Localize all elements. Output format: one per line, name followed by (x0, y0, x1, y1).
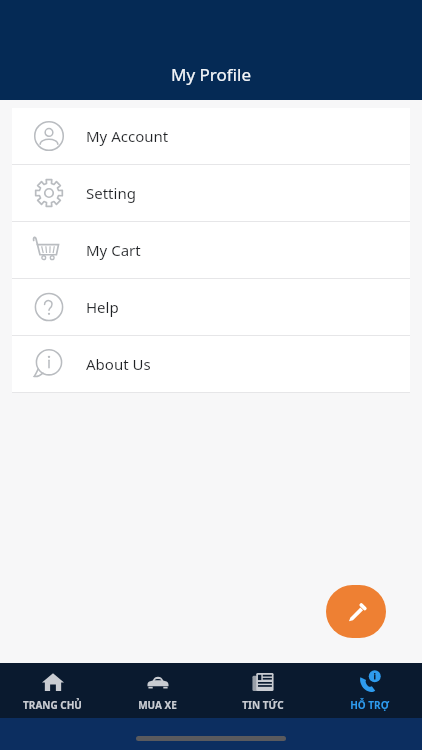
staticText: Help (86, 297, 119, 317)
button[interactable]: TIN TỨC (210, 663, 316, 718)
button[interactable]: My Cart (12, 222, 410, 279)
staticText: About Us (86, 354, 151, 374)
button[interactable]: Help (12, 279, 410, 336)
button[interactable]: TRANG CHỦ (0, 663, 105, 718)
staticText: Setting (86, 183, 136, 203)
staticText: My Account (86, 126, 169, 146)
button[interactable]: My Account (12, 108, 410, 165)
staticText: HỖ TRỢ (350, 698, 389, 712)
button[interactable]: About Us (12, 336, 410, 393)
staticText: MUA XE (138, 698, 177, 712)
staticText: My Cart (86, 240, 141, 260)
button[interactable]: HỖ TRỢ (316, 663, 422, 718)
staticText: TIN TỨC (242, 698, 284, 712)
button[interactable]: Edit (326, 585, 386, 638)
staticText: TRANG CHỦ (23, 698, 82, 712)
button[interactable]: Setting (12, 165, 410, 222)
staticText: My Profile (171, 63, 251, 86)
button[interactable]: MUA XE (105, 663, 210, 718)
